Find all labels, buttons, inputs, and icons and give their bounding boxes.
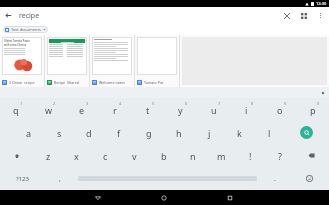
staticText: g: [146, 127, 152, 139]
button[interactable]: s: [44, 121, 74, 144]
button[interactable]: Tomato Pot: [135, 35, 179, 87]
staticText: r: [113, 104, 117, 116]
button[interactable]: Keyboard settings: [321, 91, 325, 95]
staticText: 8: [251, 101, 254, 106]
staticText: d: [86, 127, 92, 139]
button[interactable]: g: [134, 121, 164, 144]
staticText: k: [237, 127, 242, 139]
staticText: j: [208, 127, 211, 139]
button[interactable]: y: [164, 98, 197, 121]
staticText: m: [217, 150, 226, 162]
button[interactable]: Emoji: [289, 167, 329, 190]
staticText: Oldest Tomato Pasta with extra Cheese: [4, 39, 30, 47]
staticText: v: [132, 150, 137, 162]
button[interactable]: d: [74, 121, 104, 144]
staticText: 4: [119, 101, 122, 106]
staticText: c: [103, 150, 108, 162]
staticText: o: [277, 104, 283, 116]
staticText: x: [74, 150, 79, 162]
button[interactable]: x: [62, 144, 91, 167]
button[interactable]: n: [178, 144, 207, 167]
staticText: Ingredients: [61, 40, 74, 43]
button[interactable]: Clear: [278, 7, 295, 24]
staticText: h: [176, 127, 182, 139]
button[interactable]: !: [236, 144, 265, 167]
button[interactable]: i: [230, 98, 263, 121]
staticText: Tomato Pot: [144, 80, 164, 85]
button[interactable]: Welcome notes: [90, 35, 134, 87]
staticText: recipe: [19, 11, 278, 21]
staticText: 5: [152, 101, 155, 106]
button[interactable]: u: [197, 98, 230, 121]
staticText: 3: [86, 101, 89, 106]
button[interactable]: ,: [45, 167, 74, 190]
button[interactable]: Back: [0, 7, 17, 24]
staticText: e: [79, 104, 85, 116]
staticText: 2: [53, 101, 56, 106]
button[interactable]: r: [98, 98, 131, 121]
button[interactable]: Back: [65, 190, 131, 205]
button[interactable]: k: [224, 121, 254, 144]
staticText: 6: [185, 101, 188, 106]
staticText: a: [26, 127, 32, 139]
staticText: 9: [284, 101, 287, 106]
staticText: u: [211, 104, 217, 116]
button[interactable]: ?: [265, 144, 294, 167]
button[interactable]: f: [104, 121, 134, 144]
button[interactable]: Backspace: [294, 144, 329, 167]
staticText: l: [268, 127, 271, 139]
button[interactable]: ?123: [0, 167, 45, 190]
staticText: 12:30: [316, 1, 327, 6]
staticText: f: [117, 127, 121, 139]
staticText: ,: [59, 174, 61, 184]
button[interactable]: h: [164, 121, 194, 144]
button[interactable]: c: [91, 144, 120, 167]
button[interactable]: a: [14, 121, 44, 144]
button[interactable]: More options: [312, 7, 329, 24]
button[interactable]: p: [296, 98, 329, 121]
staticText: Text documents: [11, 27, 41, 32]
staticText: 3 Onion recipe: [9, 80, 35, 85]
staticText: ?123: [16, 175, 29, 183]
button[interactable]: Grid view: [295, 7, 312, 24]
button[interactable]: Text documents: [3, 26, 48, 33]
staticText: b: [161, 150, 167, 162]
button[interactable]: Space: [74, 167, 260, 190]
button[interactable]: Recents: [197, 190, 263, 205]
staticText: Welcome notes: [99, 80, 125, 85]
staticText: ?: [278, 150, 282, 162]
staticText: n: [190, 150, 196, 162]
staticText: .: [274, 174, 276, 184]
button[interactable]: Home: [131, 190, 197, 205]
button[interactable]: m: [207, 144, 236, 167]
button[interactable]: l: [254, 121, 284, 144]
staticText: s: [57, 127, 62, 139]
staticText: i: [245, 104, 248, 116]
staticText: z: [46, 150, 51, 162]
staticText: !: [249, 150, 252, 162]
button[interactable]: t: [131, 98, 164, 121]
staticText: p: [310, 104, 316, 116]
staticText: w: [45, 104, 53, 116]
staticText: 7: [218, 101, 221, 106]
button[interactable]: q: [0, 98, 32, 121]
staticText: 1: [20, 101, 23, 106]
button[interactable]: b: [149, 144, 178, 167]
staticText: t: [146, 104, 150, 116]
button[interactable]: v: [120, 144, 149, 167]
button[interactable]: o: [263, 98, 296, 121]
staticText: Recipe Shared: [54, 80, 79, 85]
button[interactable]: w: [32, 98, 65, 121]
button[interactable]: Oldest Tomato Pasta with extra Cheese: [0, 35, 44, 87]
button[interactable]: Ingredients: [45, 35, 89, 87]
button[interactable]: Search: [284, 121, 329, 144]
button[interactable]: z: [34, 144, 62, 167]
staticText: y: [178, 104, 183, 116]
staticText: q: [13, 104, 19, 116]
button[interactable]: e: [65, 98, 98, 121]
button[interactable]: Shift: [0, 144, 34, 167]
button[interactable]: j: [194, 121, 224, 144]
staticText: 0: [317, 101, 320, 106]
